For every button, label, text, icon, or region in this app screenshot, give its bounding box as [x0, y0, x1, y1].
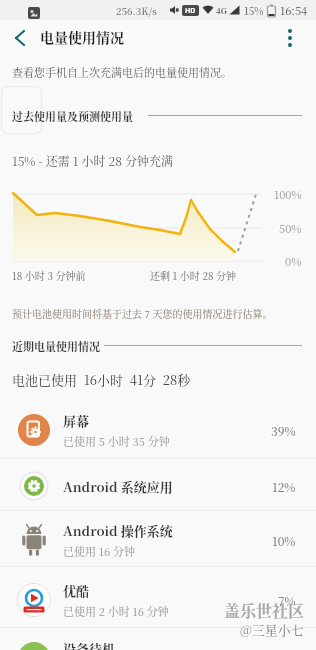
staticText: 电量使用情况 — [40, 27, 124, 47]
staticText: 盖乐世社区 — [225, 600, 306, 623]
staticText: 已使用 16 分钟 — [63, 543, 135, 559]
staticText: 4G — [216, 5, 227, 16]
staticText: 还剩 1 小时 28 分钟 — [150, 268, 237, 282]
button[interactable]: 优酷 — [0, 572, 316, 628]
staticText: 近期电量使用情况 — [12, 338, 100, 354]
staticText: 16:54 — [280, 2, 308, 18]
staticText: @三星小七 — [241, 621, 305, 640]
button[interactable]: Android 操作系统 — [0, 512, 316, 568]
staticText: 15% — [244, 3, 264, 17]
staticText: 0% — [285, 253, 302, 269]
staticText: Android 操作系统 — [63, 521, 173, 540]
staticText: Android 系统应用 — [63, 477, 173, 496]
staticText: 盖乐世社区 — [224, 599, 305, 622]
staticText: 39% — [271, 422, 296, 439]
staticText: 屏幕 — [63, 411, 90, 430]
button[interactable] — [6, 24, 34, 52]
staticText: 100% — [274, 186, 302, 202]
staticText: 设备待机 — [63, 639, 116, 650]
staticText: 7% — [278, 592, 296, 609]
staticText: 优酷 — [63, 581, 90, 600]
button[interactable]: Android 系统应用 — [0, 458, 316, 514]
staticText: 电池已使用 16小时 41分 28秒 — [12, 370, 191, 389]
staticText: 256.3K/s — [116, 3, 157, 17]
button[interactable]: 屏幕 — [0, 402, 316, 458]
staticText: 12% — [272, 478, 296, 495]
staticText: 15% - 还需 1 小时 28 分钟充满 — [12, 152, 174, 169]
button[interactable] — [278, 26, 302, 50]
staticText: 18 小时 3 分钟前 — [12, 268, 86, 282]
staticText: 查看您手机自上次充满电后的电量使用情况。 — [12, 64, 232, 80]
staticText: HD — [185, 6, 196, 16]
staticText: 过去使用量及预测使用量 — [12, 108, 133, 124]
staticText: 已使用 2 小时 16 分钟 — [63, 603, 169, 619]
staticText: 10% — [272, 532, 296, 549]
staticText: @三星小七 — [240, 620, 304, 639]
staticText: 50% — [279, 220, 302, 236]
staticText: 已使用 5 小时 35 分钟 — [63, 433, 170, 449]
button[interactable]: 设备待机 — [0, 630, 316, 650]
staticText: 预计电池使用时间将基于过去 7 天您的使用情况进行估算。 — [12, 306, 273, 320]
